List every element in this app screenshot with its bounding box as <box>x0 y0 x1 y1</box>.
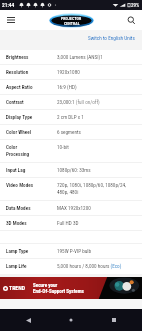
staticText: Lamp Type <box>6 248 41 254</box>
staticText: 5,000 hours / 8,000 hours (Eco) <box>57 263 122 269</box>
button[interactable]: Switch to English Units <box>88 35 135 41</box>
staticText: 21:44 <box>2 2 15 8</box>
button[interactable]: Back <box>13 309 43 331</box>
button[interactable]: Home <box>56 309 86 331</box>
button[interactable]: Search <box>120 10 142 30</box>
staticText: Color Processing <box>6 144 41 157</box>
staticText: Secure your End-Of-Support Systems <box>33 282 84 294</box>
staticText: Full HD 3D <box>57 220 79 226</box>
staticText: 195W P-VIP bulb <box>57 248 92 254</box>
staticText: Color Wheel <box>6 129 41 135</box>
staticText: Aspect Ratio <box>6 84 41 90</box>
staticText: Contrast <box>6 99 41 105</box>
staticText: PROJECTOR <box>61 16 82 21</box>
staticText: 10-bit <box>57 144 69 150</box>
staticText: 1080p/60: 33ms <box>57 167 91 173</box>
staticText: Brightness <box>6 54 41 60</box>
button[interactable]: Menu <box>0 10 22 30</box>
staticText: 3,000 Lumens (ANSI)1 <box>57 54 103 60</box>
staticText: Data Modes <box>6 205 41 211</box>
staticText: Video Modes <box>6 182 41 188</box>
staticText: Resolution <box>6 69 41 75</box>
staticText: TREND <box>9 285 26 292</box>
staticText: 6 segments <box>57 129 81 135</box>
staticText: MAX 1920x1200 <box>57 205 91 211</box>
staticText: Lamp Life <box>6 263 41 269</box>
staticText: 23,000:1 (full on/off) <box>57 99 100 105</box>
staticText: 16:9 (HD) <box>57 84 77 90</box>
staticText: 720p, 1080i, 1080p/60, 1080p/24, 480p, 4… <box>57 182 127 195</box>
staticText: 2 cm DLP x 1 <box>57 114 84 120</box>
staticText: 3D Modes <box>6 220 41 226</box>
button[interactable]: TREND <box>0 277 142 299</box>
staticText: 29% <box>131 2 140 8</box>
button[interactable]: Recents <box>99 309 129 331</box>
staticText: CENTRAL <box>64 21 80 26</box>
staticText: Display Type <box>6 114 41 120</box>
staticText: Input Lag <box>6 167 41 173</box>
staticText: 1920x1080 <box>57 69 80 75</box>
